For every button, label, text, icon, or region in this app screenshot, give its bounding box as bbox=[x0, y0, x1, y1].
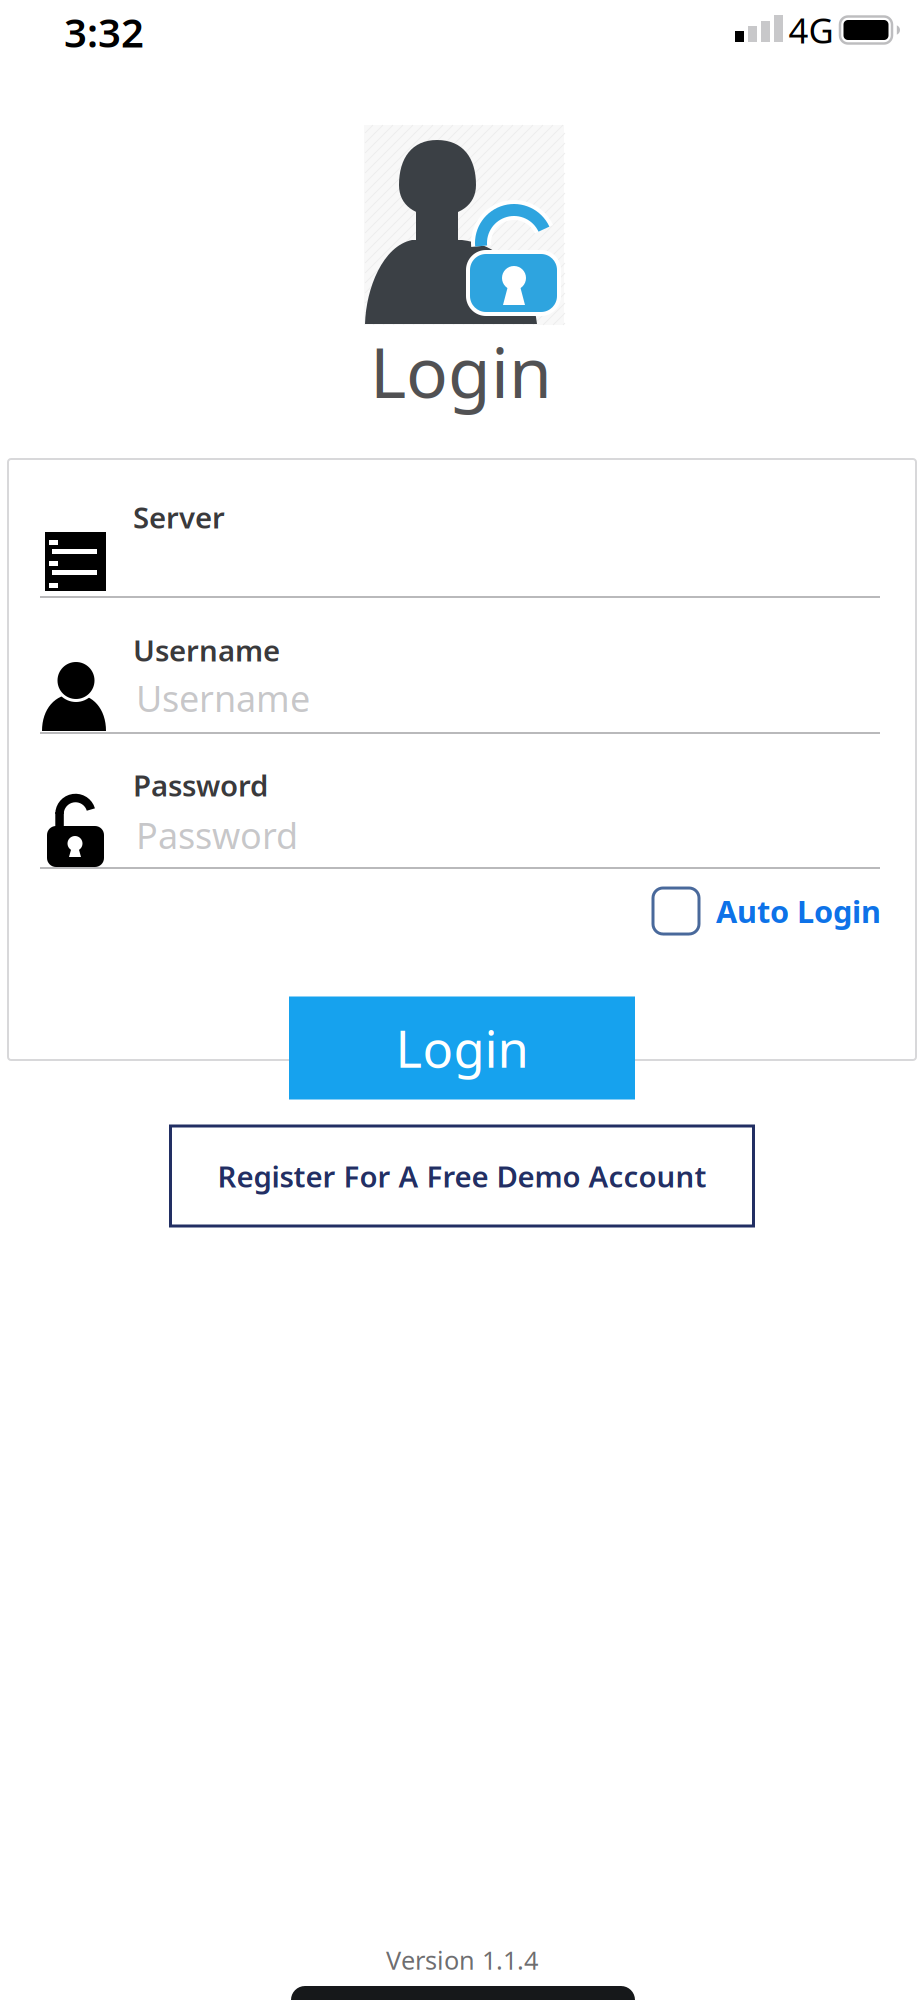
button[interactable]: Register For A Free Demo Account bbox=[170, 1126, 753, 1226]
staticText: Auto Login bbox=[716, 891, 881, 931]
button[interactable]: Login bbox=[289, 996, 635, 1099]
staticText: Login bbox=[370, 325, 552, 417]
staticText: 4G bbox=[788, 7, 833, 53]
staticText: Register For A Free Demo Account bbox=[217, 1156, 706, 1195]
staticText: Username bbox=[136, 674, 310, 722]
staticText: Password bbox=[136, 811, 298, 859]
staticText: Login bbox=[395, 1014, 528, 1082]
staticText: 3:32 bbox=[64, 5, 144, 58]
staticText: Server bbox=[133, 497, 225, 536]
staticText: Version 1.1.4 bbox=[386, 1943, 538, 1977]
staticText: Password bbox=[133, 765, 268, 804]
staticText: Username bbox=[133, 630, 280, 669]
button[interactable]: Auto Login bbox=[653, 888, 881, 934]
